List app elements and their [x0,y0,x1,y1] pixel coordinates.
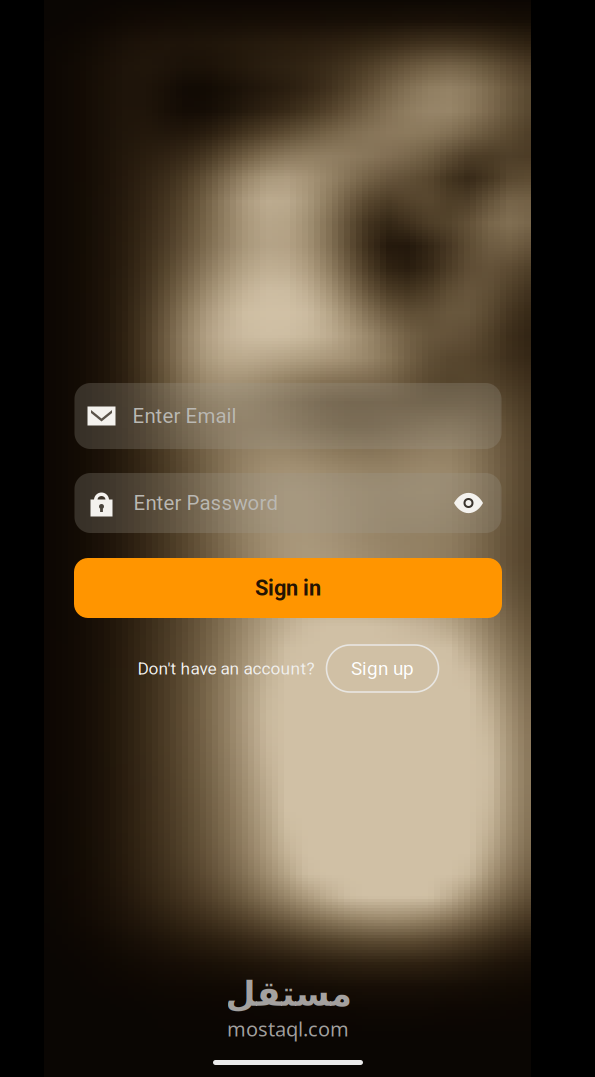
staticText: Enter Password [133,491,278,515]
staticText: Sign up [351,657,414,680]
staticText: Don't have an account? [137,658,314,679]
button[interactable]: Enter Email [74,383,501,449]
staticText: Sign in [255,575,321,601]
button[interactable]: Sign up [326,645,438,692]
staticText: Enter Email [132,404,236,428]
staticText: mostaql.com [227,1015,349,1042]
button[interactable]: Sign in [74,558,502,618]
button[interactable]: Enter Password [74,473,501,533]
staticText: مستقل [225,974,351,1013]
